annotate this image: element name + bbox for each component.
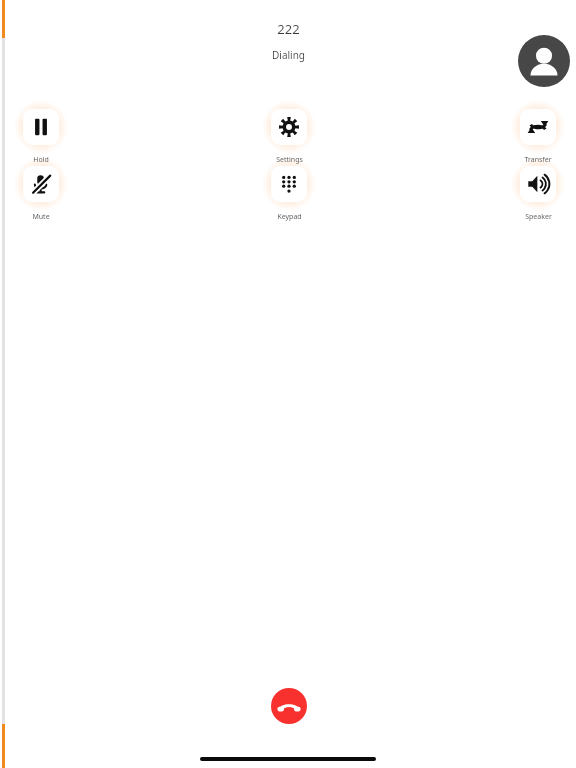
staticText: Settings	[276, 155, 303, 165]
staticText: Transfer	[524, 155, 552, 165]
button[interactable]: Keypad	[262, 157, 316, 211]
button[interactable]: Contact avatar	[518, 35, 570, 87]
staticText: 222	[277, 20, 300, 38]
button[interactable]: Transfer	[511, 100, 565, 154]
staticText: Keypad	[277, 212, 302, 222]
button[interactable]: Settings	[262, 100, 316, 154]
staticText: Speaker	[525, 212, 552, 222]
staticText: Dialing	[272, 48, 305, 62]
button[interactable]: Hold	[14, 100, 68, 154]
staticText: Mute	[32, 212, 50, 222]
staticText: Hold	[33, 155, 49, 165]
button[interactable]: Speaker	[511, 157, 565, 211]
button[interactable]: End call	[271, 688, 307, 724]
button[interactable]: Mute	[14, 157, 68, 211]
